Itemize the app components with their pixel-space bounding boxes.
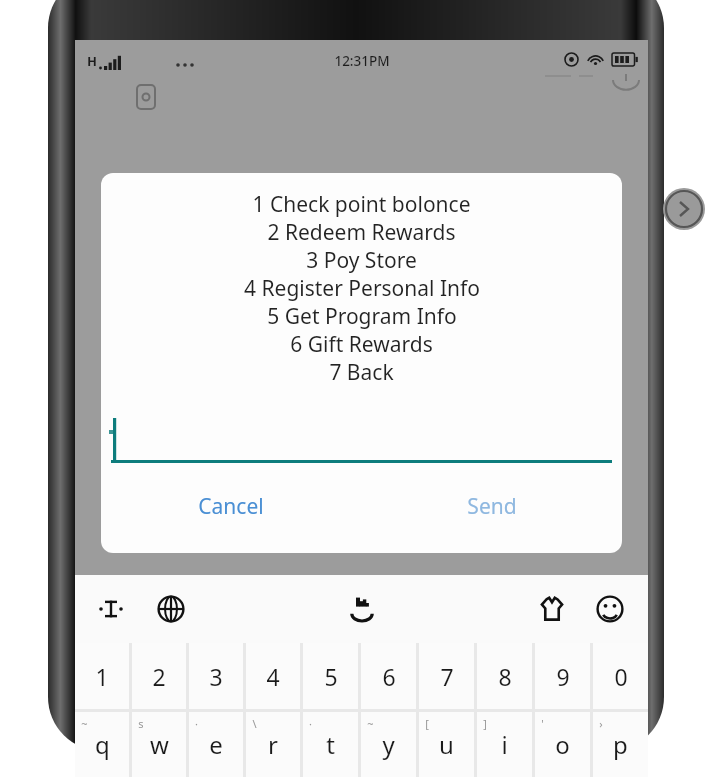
button[interactable]: Handwriting [342,589,382,629]
staticText: 7 Back [329,358,394,386]
staticText: › [599,716,603,731]
button[interactable]: 4 [246,643,300,709]
staticText: Cancel [198,492,264,521]
button[interactable]: 0 [593,643,648,709]
button[interactable]: ~ [361,712,416,777]
button[interactable]: · [189,712,243,777]
staticText: 12:31PM [334,52,390,70]
button[interactable]: Language [153,591,189,627]
staticText: 3 [209,661,223,692]
button[interactable]: Emoji [592,591,628,627]
staticText: 4 Register Personal Info [244,274,480,302]
button[interactable]: 2 [132,643,186,709]
button[interactable]: › [593,712,648,777]
button[interactable]: ] [477,712,532,777]
staticText: 5 Get Program Info [267,302,457,330]
staticText: Send [467,492,517,521]
button[interactable]: s [132,712,186,777]
staticText: 2 [152,661,166,692]
staticText: · [195,716,198,731]
button[interactable]: \ [246,712,300,777]
staticText: 9 [556,661,570,692]
staticText: e [209,728,223,761]
staticText: 0 [614,661,628,692]
staticText: i [501,728,508,761]
button[interactable]: ~ [75,712,129,777]
button[interactable]: 9 [535,643,590,709]
staticText: ' [541,716,544,731]
staticText: 7 [440,661,454,692]
button[interactable]: 7 [419,643,474,709]
staticText: y [382,728,395,761]
staticText: 5 [324,661,338,692]
staticText: · [309,716,312,731]
button[interactable]: Theme [534,591,570,627]
staticText: ~ [367,716,374,731]
staticText: \ [252,716,257,731]
staticText: 6 Gift Rewards [290,330,433,358]
staticText: H [87,52,97,70]
button[interactable]: Send [361,478,622,534]
staticText: ~ [81,716,88,731]
button[interactable]: Call [663,188,705,230]
staticText: [ [425,716,429,731]
staticText: o [555,728,570,761]
staticText: 6 [382,661,396,692]
button[interactable]: · [303,712,358,777]
button[interactable]: 6 [361,643,416,709]
button[interactable]: [ [419,712,474,777]
staticText: 1 Check point bolonce [252,190,471,218]
staticText: *143# [203,172,273,205]
button[interactable]: 3 [189,643,243,709]
button[interactable]: 1 [75,643,129,709]
staticText: w [150,728,169,761]
button[interactable]: Cancel [101,478,361,534]
staticText: r [268,728,278,761]
staticText: 4 [266,661,280,692]
button[interactable] [101,412,622,464]
button[interactable]: 5 [303,643,358,709]
staticText: ] [483,716,487,731]
staticText: 1 [95,661,109,692]
staticText: 3 Poy Store [306,246,417,274]
staticText: p [613,728,628,761]
button[interactable]: 8 [477,643,532,709]
staticText: q [95,728,110,761]
button[interactable]: ' [535,712,590,777]
staticText: s [138,716,144,731]
staticText: 2 Redeem Rewards [267,218,456,246]
staticText: u [439,728,454,761]
staticText: t [326,728,335,761]
button[interactable]: Text cursor [95,593,127,625]
staticText: 8 [498,661,512,692]
